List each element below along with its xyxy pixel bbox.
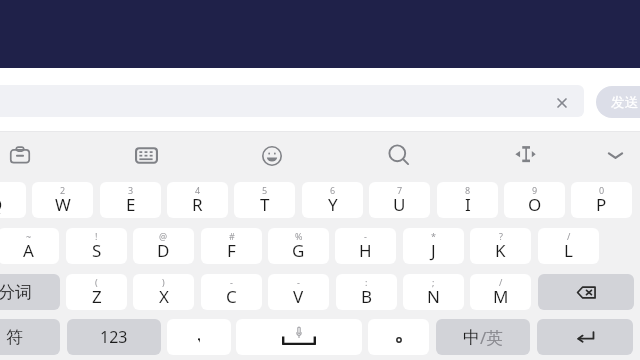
staticText: K [495, 239, 506, 262]
staticText: 3 [128, 184, 134, 196]
staticText: 中 [463, 327, 480, 348]
staticText: S [92, 239, 102, 262]
staticText: Z [92, 285, 102, 308]
staticText: M [493, 285, 509, 308]
staticText: 0 [599, 184, 605, 196]
staticText: /英 [480, 326, 504, 349]
button[interactable]: 7 [369, 182, 430, 218]
button[interactable]: Clipboard [0, 132, 43, 178]
button[interactable]: 发送 [596, 86, 640, 118]
button[interactable]: 4 [167, 182, 228, 218]
button[interactable]: * [403, 228, 464, 264]
staticText: A [23, 239, 34, 262]
staticText: 5 [262, 184, 268, 196]
button[interactable]: 5 [234, 182, 295, 218]
button[interactable]: - [335, 228, 396, 264]
button[interactable]: ~ [0, 228, 59, 264]
button[interactable]: 0 [571, 182, 632, 218]
staticText: ) [162, 276, 165, 288]
staticText: / [499, 276, 503, 288]
button[interactable]: % [268, 228, 329, 264]
button[interactable]: Keyboard [123, 132, 169, 178]
staticText: 123 [100, 326, 128, 348]
button[interactable]: Hide keyboard [592, 132, 638, 178]
staticText: 9 [532, 184, 538, 196]
button[interactable]: 1 [0, 182, 26, 218]
staticText: / [567, 230, 571, 242]
staticText: U [393, 193, 406, 216]
button[interactable]: Clear [551, 92, 573, 114]
staticText: D [157, 239, 170, 262]
staticText: ; [432, 276, 435, 288]
button[interactable] [167, 319, 231, 355]
staticText: L [564, 239, 573, 262]
staticText: 8 [465, 184, 471, 196]
button[interactable]: @ [133, 228, 194, 264]
staticText: X [159, 285, 169, 308]
button[interactable]: 8 [437, 182, 498, 218]
button[interactable]: 123 [67, 319, 161, 355]
button[interactable]: 中 [436, 319, 530, 355]
button[interactable]: # [201, 228, 262, 264]
button[interactable] [537, 319, 633, 355]
staticText: N [427, 285, 440, 308]
staticText: Y [328, 193, 338, 216]
staticText: C [226, 285, 237, 308]
button[interactable]: 符 [0, 319, 60, 355]
staticText: I [465, 193, 471, 216]
staticText: E [126, 193, 136, 216]
staticText: - [364, 230, 367, 242]
staticText: - [297, 276, 300, 288]
staticText: - [230, 276, 233, 288]
staticText: J [431, 239, 436, 262]
staticText: H [359, 239, 372, 262]
staticText: 符 [6, 327, 23, 348]
staticText: 6 [330, 184, 336, 196]
button[interactable]: / [470, 274, 531, 310]
staticText: 分词 [0, 282, 32, 303]
button[interactable] [236, 319, 362, 355]
staticText: % [295, 230, 303, 242]
button[interactable]: ( [66, 274, 127, 310]
staticText: O [528, 193, 542, 216]
button[interactable]: Search [376, 132, 422, 178]
staticText: @ [159, 230, 168, 242]
staticText: G [292, 239, 305, 262]
button[interactable]: ! [66, 228, 127, 264]
staticText: W [55, 193, 71, 216]
button[interactable]: ; [403, 274, 464, 310]
staticText: ( [95, 276, 98, 288]
button[interactable]: 2 [32, 182, 93, 218]
staticText: 2 [60, 184, 66, 196]
staticText: T [260, 193, 270, 216]
button[interactable]: / [538, 228, 599, 264]
button[interactable]: Move cursor [502, 132, 548, 178]
staticText: V [293, 285, 304, 308]
button[interactable] [538, 274, 634, 310]
staticText: P [596, 193, 607, 216]
button[interactable]: 3 [100, 182, 161, 218]
staticText: F [227, 239, 236, 262]
button[interactable]: 9 [504, 182, 565, 218]
staticText: ! [95, 230, 98, 242]
button[interactable]: 分词 [0, 274, 60, 310]
staticText: ~ [26, 230, 32, 242]
button[interactable]: ) [133, 274, 194, 310]
staticText: : [365, 276, 368, 288]
button[interactable]: : [336, 274, 397, 310]
staticText: ? [499, 230, 503, 242]
staticText: 4 [195, 184, 201, 196]
button[interactable] [0, 85, 584, 117]
staticText: 发送 [611, 94, 638, 111]
button[interactable]: - [268, 274, 329, 310]
staticText: # [229, 230, 235, 242]
button[interactable]: ? [470, 228, 531, 264]
button[interactable] [368, 319, 429, 355]
staticText: * [431, 230, 436, 242]
staticText: B [361, 285, 373, 308]
button[interactable]: 6 [302, 182, 363, 218]
button[interactable]: - [201, 274, 262, 310]
staticText: Q [0, 193, 3, 216]
staticText: R [192, 193, 203, 216]
button[interactable]: Emoji [249, 133, 295, 179]
